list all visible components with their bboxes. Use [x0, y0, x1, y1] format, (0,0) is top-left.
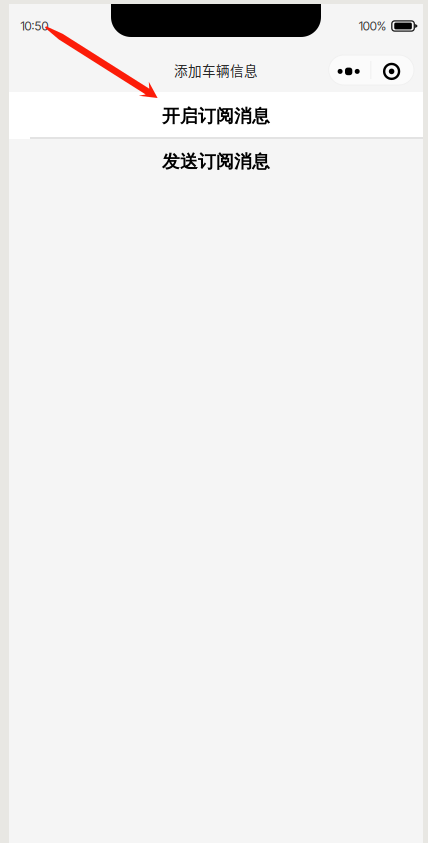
staticText: 添加车辆信息	[174, 60, 258, 80]
button[interactable]: 开启订阅消息	[9, 92, 423, 139]
staticText: 10:50	[20, 19, 48, 33]
button[interactable]: Mini program menu	[329, 55, 414, 85]
staticText: 发送订阅消息	[162, 150, 270, 173]
button[interactable]: 发送订阅消息	[9, 139, 423, 185]
staticText: 100%	[359, 19, 386, 33]
staticText: 开启订阅消息	[162, 105, 270, 127]
